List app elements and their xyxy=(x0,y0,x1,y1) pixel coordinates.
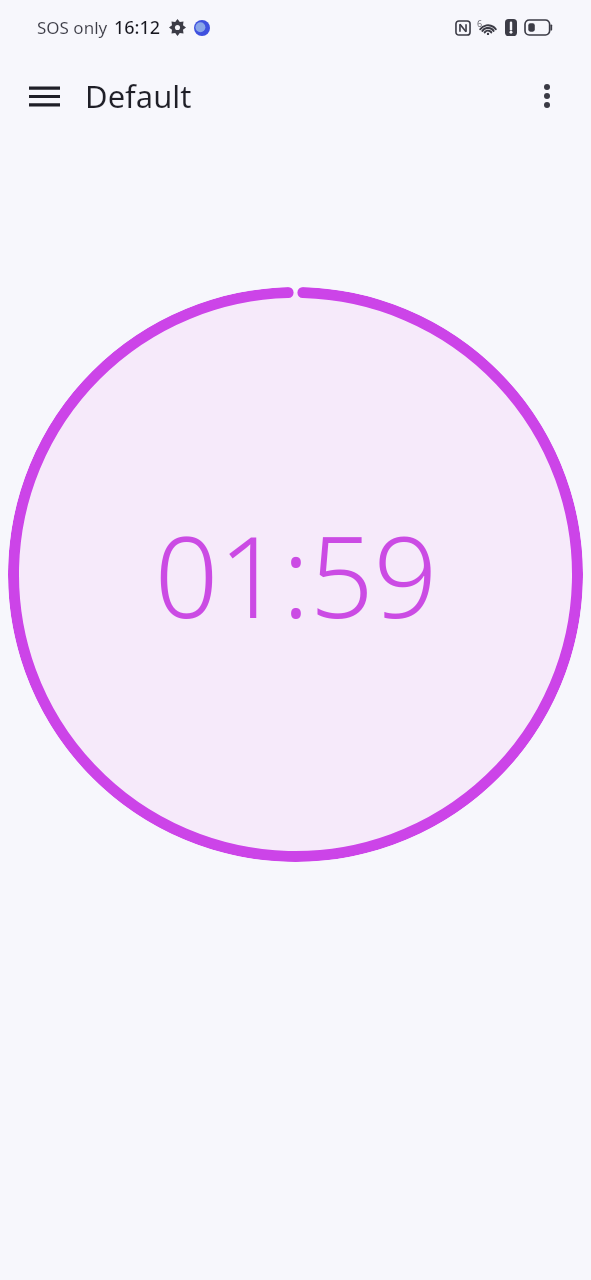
button[interactable]: More options xyxy=(523,72,571,120)
staticText: 01:59 xyxy=(154,498,438,651)
button[interactable]: 01:59 xyxy=(8,287,583,862)
button[interactable]: Open navigation menu xyxy=(20,72,68,120)
staticText: 16:12 xyxy=(114,15,161,40)
staticText: SOS only xyxy=(37,16,108,39)
staticText: Default xyxy=(85,75,523,117)
staticText: 6 xyxy=(477,17,483,29)
